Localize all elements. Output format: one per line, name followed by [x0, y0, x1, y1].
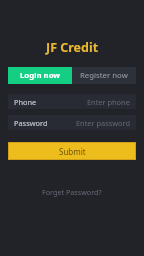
staticText: Login now [20, 70, 61, 81]
staticText: Password [14, 118, 48, 128]
staticText: Submit [59, 146, 86, 157]
button[interactable]: Register now [72, 67, 136, 84]
button[interactable]: Login now [8, 67, 72, 84]
staticText: Enter phone [87, 97, 130, 107]
button[interactable]: Phone [8, 94, 136, 109]
staticText: Enter password [76, 118, 130, 128]
staticText: Forget Password? [42, 187, 102, 197]
button[interactable]: Password [8, 115, 136, 130]
button[interactable]: Forget Password? [34, 183, 110, 201]
staticText: Register now [80, 70, 128, 81]
staticText: Phone [14, 97, 37, 107]
staticText: JF Credit [46, 39, 99, 56]
button[interactable]: Submit [8, 142, 136, 160]
